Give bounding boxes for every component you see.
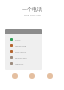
staticText: CONTACT	[15, 50, 27, 53]
button[interactable]: SETTINGS	[5, 54, 42, 60]
button[interactable]: Contact	[12, 73, 18, 79]
staticText: 一个电话	[22, 6, 42, 12]
staticText: ONE CALL APP	[24, 13, 41, 16]
staticText: ABOUT	[15, 62, 24, 65]
staticText: CALL	[15, 38, 21, 41]
button[interactable]: ABOUT	[5, 60, 42, 66]
staticText: SETTINGS	[15, 56, 27, 59]
button[interactable]: Contact	[47, 73, 53, 79]
button[interactable]: CALL	[5, 36, 42, 42]
button[interactable]: CONTACT	[5, 48, 42, 54]
staticText: MESSAGE	[15, 44, 27, 47]
button[interactable]: MESSAGE	[5, 42, 42, 48]
button[interactable]: Contact	[29, 73, 35, 79]
